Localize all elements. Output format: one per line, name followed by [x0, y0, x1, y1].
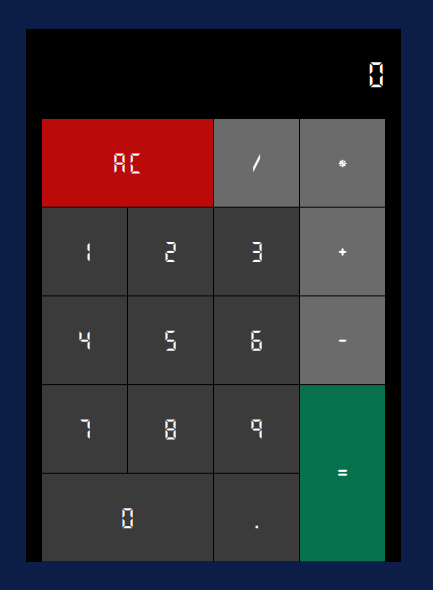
- staticText: 9: [248, 416, 264, 442]
- staticText: 8: [162, 416, 178, 442]
- staticText: +: [334, 239, 350, 264]
- staticText: 6: [248, 327, 264, 353]
- button[interactable]: 4: [42, 296, 127, 384]
- staticText: =: [334, 460, 350, 486]
- button[interactable]: Equals: [300, 385, 385, 561]
- staticText: -: [334, 327, 350, 353]
- staticText: /: [248, 150, 264, 176]
- button[interactable]: 5: [128, 296, 213, 384]
- button[interactable]: 6: [214, 296, 299, 384]
- staticText: 3: [248, 239, 264, 264]
- button[interactable]: 7: [42, 385, 127, 473]
- staticText: 0: [119, 505, 135, 530]
- button[interactable]: 0: [42, 474, 213, 561]
- button[interactable]: 9: [214, 385, 299, 473]
- staticText: 5: [162, 327, 178, 353]
- staticText: 0: [366, 58, 386, 90]
- button[interactable]: Divide: [214, 119, 299, 207]
- button[interactable]: 2: [128, 208, 213, 295]
- button[interactable]: Add: [300, 208, 385, 295]
- staticText: .: [255, 505, 257, 530]
- button[interactable]: Subtract: [300, 296, 385, 384]
- button[interactable]: All clear: [42, 119, 213, 207]
- button[interactable]: 3: [214, 208, 299, 295]
- staticText: *: [334, 150, 350, 176]
- button[interactable]: 8: [128, 385, 213, 473]
- button[interactable]: 1: [42, 208, 127, 295]
- staticText: 2: [162, 239, 178, 264]
- staticText: 1: [76, 239, 92, 264]
- staticText: 7: [76, 416, 92, 442]
- staticText: AC: [111, 150, 143, 176]
- button[interactable]: Multiply: [300, 119, 385, 207]
- staticText: 4: [76, 327, 92, 353]
- button[interactable]: Decimal point: [214, 474, 299, 561]
